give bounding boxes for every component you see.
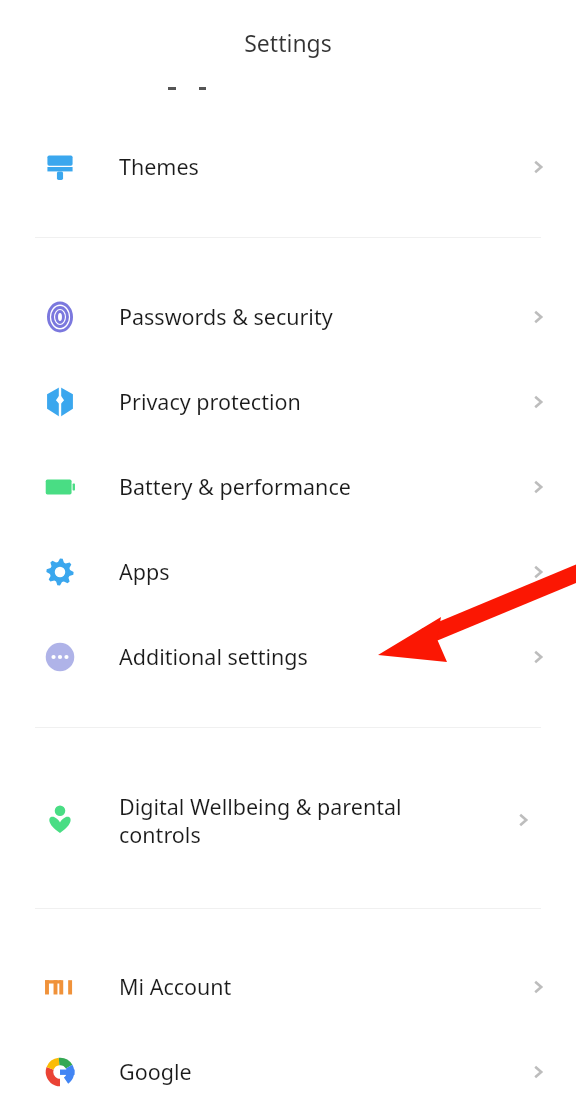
staticText: Themes <box>119 152 199 181</box>
staticText: Mi Account <box>119 972 232 1001</box>
staticText: Passwords & security <box>119 302 333 331</box>
staticText: Google <box>119 1057 192 1086</box>
staticText: Digital Wellbeing & parental controls <box>119 792 469 849</box>
button[interactable]: Apps <box>0 529 576 614</box>
button[interactable]: Themes <box>0 124 576 209</box>
button[interactable]: Google <box>0 1029 576 1114</box>
button[interactable]: Passwords & security <box>0 274 576 359</box>
button[interactable]: Additional settings <box>0 614 576 699</box>
staticText: Battery & performance <box>119 472 351 501</box>
staticText: Privacy protection <box>119 387 301 416</box>
button[interactable]: Privacy protection <box>0 359 576 444</box>
staticText: Apps <box>119 557 170 586</box>
button[interactable]: Battery & performance <box>0 444 576 529</box>
staticText: Settings <box>244 27 332 58</box>
staticText: Additional settings <box>119 642 308 671</box>
button[interactable]: Digital Wellbeing & parental controls <box>0 765 576 875</box>
button[interactable]: Mi Account <box>0 944 576 1029</box>
